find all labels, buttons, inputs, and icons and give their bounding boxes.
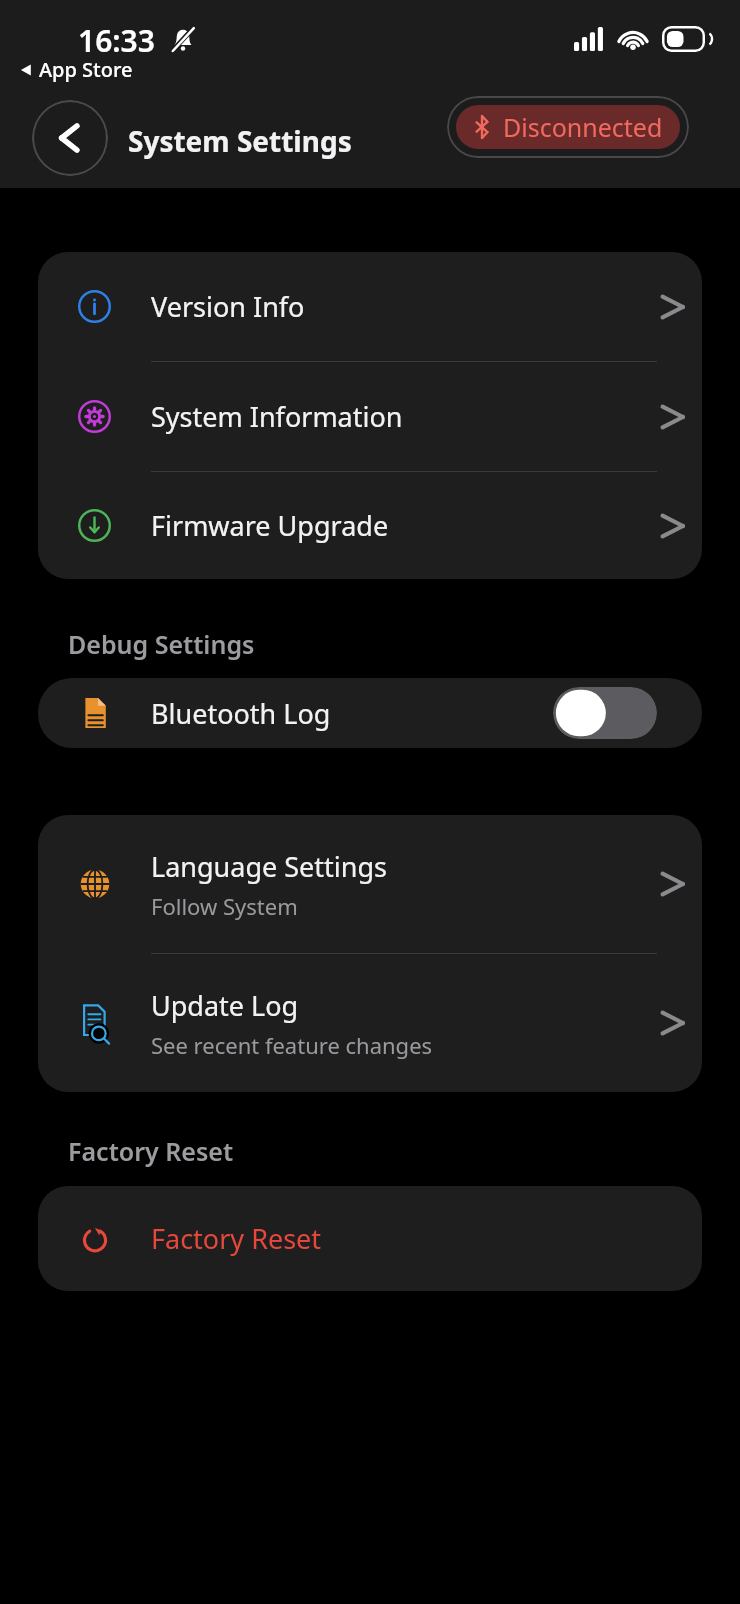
button[interactable]: Bluetooth Log toggle (553, 687, 657, 739)
button[interactable]: System Information (38, 362, 702, 471)
button[interactable]: Back (32, 100, 108, 176)
staticText: Language Settings (151, 848, 388, 885)
staticText: Follow System (151, 891, 298, 921)
staticText: System Information (151, 398, 403, 435)
staticText: Version Info (151, 288, 305, 325)
staticText: See recent feature changes (151, 1030, 433, 1060)
button[interactable]: Disconnected (447, 96, 689, 158)
button[interactable]: Language Settings (38, 815, 702, 953)
staticText: Factory Reset (68, 1134, 234, 1168)
staticText: Update Log (151, 987, 299, 1024)
staticText: App Store (39, 56, 133, 83)
staticText: Debug Settings (68, 627, 255, 661)
staticText: 16:33 (78, 20, 155, 61)
staticText: Disconnected (503, 110, 663, 144)
staticText: System Settings (128, 122, 352, 160)
button[interactable]: Update Log (38, 954, 702, 1092)
staticText: Bluetooth Log (151, 695, 553, 732)
button[interactable]: Factory Reset (38, 1186, 702, 1291)
staticText: Firmware Upgrade (151, 507, 389, 544)
button[interactable]: Bluetooth Log (38, 678, 702, 748)
staticText: Factory Reset (151, 1220, 322, 1257)
button[interactable]: Version Info (38, 252, 702, 361)
button[interactable]: Firmware Upgrade (38, 472, 702, 579)
